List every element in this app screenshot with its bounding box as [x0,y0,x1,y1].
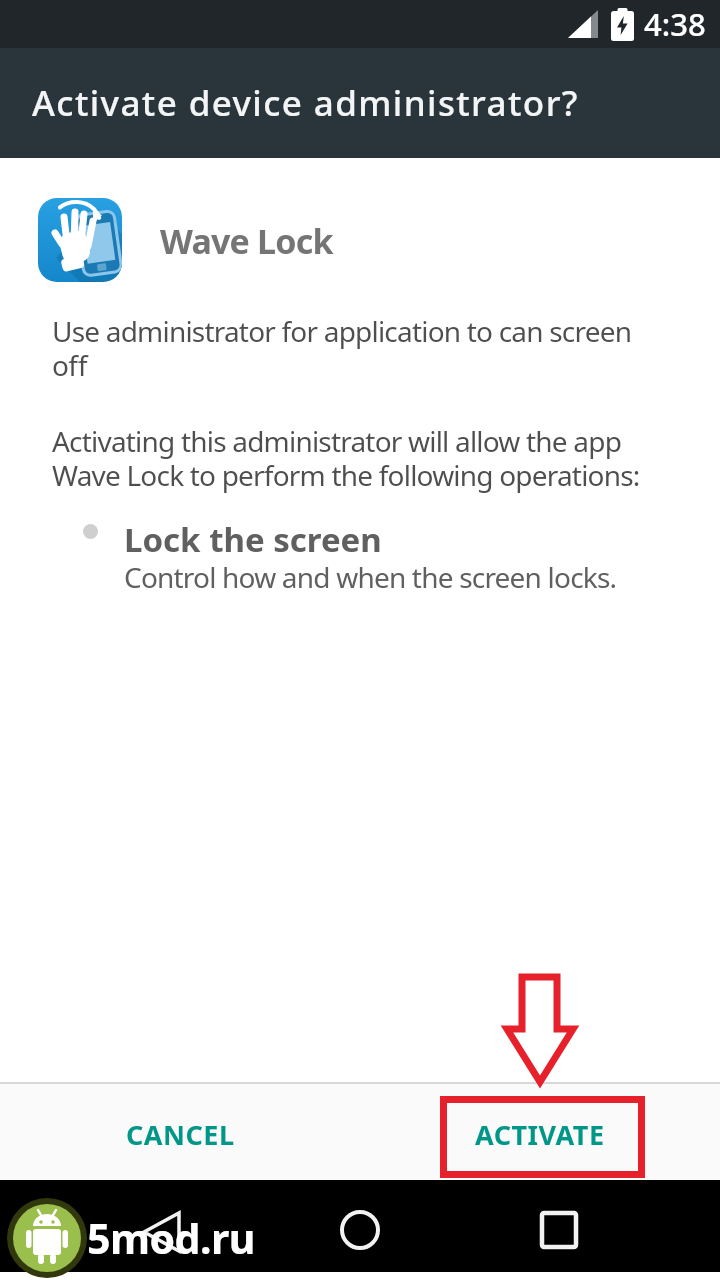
staticText: Activate device administrator? [32,79,579,127]
staticText: ACTIVATE [475,1116,605,1153]
button[interactable]: CANCEL [110,1102,250,1166]
staticText: Wave Lock [160,218,333,264]
button[interactable] [328,1198,392,1262]
staticText: Control how and when the screen locks. [124,558,617,596]
staticText: Activating this administrator will allow… [52,422,640,494]
button[interactable]: ACTIVATE [462,1102,618,1166]
staticText: Use administrator for application to can… [52,312,632,384]
staticText: Lock the screen [124,517,382,562]
staticText: 4:38 [644,3,706,45]
button[interactable] [527,1198,591,1262]
staticText: 5mod.ru [87,1210,255,1266]
staticText: CANCEL [126,1116,235,1153]
button[interactable] [130,1200,194,1264]
